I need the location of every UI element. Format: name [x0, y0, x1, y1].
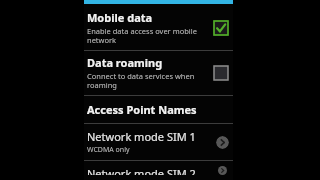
button[interactable]: Open Network mode SIM 2 [216, 166, 229, 175]
button[interactable]: Open Network mode SIM 1 [216, 136, 229, 149]
button[interactable]: Network mode SIM 1 [84, 124, 233, 160]
staticText: WCDMA only [87, 145, 130, 155]
button[interactable]: Access Point Names [84, 96, 233, 123]
staticText: Connect to data services when roaming [87, 71, 208, 90]
button[interactable]: Disabled [212, 64, 230, 82]
button[interactable]: Mobile data [84, 6, 233, 50]
staticText: Enable data access over mobile network [87, 26, 208, 45]
button[interactable]: Network mode SIM 2 [84, 161, 233, 180]
button[interactable]: Data roaming [84, 51, 233, 95]
button[interactable]: Enabled [212, 19, 230, 37]
staticText: Mobile data [87, 10, 153, 25]
staticText: Data roaming [87, 55, 163, 70]
staticText: Network mode SIM 2 [87, 166, 196, 175]
staticText: Network mode SIM 1 [87, 129, 196, 144]
staticText: Access Point Names [87, 102, 197, 117]
